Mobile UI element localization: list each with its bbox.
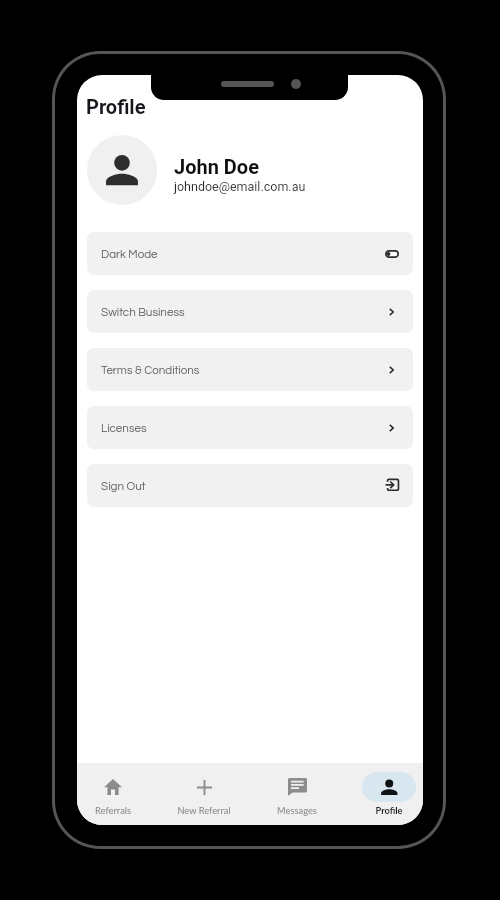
- staticText: johndoe@email.com.au: [174, 179, 306, 194]
- other: Sign out: [386, 479, 400, 493]
- staticText: John Doe: [174, 155, 259, 178]
- staticText: Referrals: [95, 805, 131, 816]
- staticText: Dark Mode: [101, 248, 158, 260]
- button[interactable]: Sign Out: [87, 464, 413, 507]
- staticText: Messages: [277, 805, 317, 816]
- staticText: Profile: [86, 95, 146, 118]
- staticText: Sign Out: [101, 480, 146, 492]
- staticText: Licenses: [101, 422, 147, 434]
- other: Dark mode toggle: [385, 250, 399, 258]
- staticText: Terms & Conditions: [101, 364, 200, 376]
- button[interactable]: Referrals: [77, 763, 157, 816]
- button[interactable]: Switch Business: [87, 290, 413, 333]
- button[interactable]: Messages: [253, 763, 341, 816]
- staticText: Switch Business: [101, 306, 185, 318]
- button[interactable]: Profile: [345, 763, 423, 816]
- button[interactable]: Licenses: [87, 406, 413, 449]
- staticText: Profile: [375, 805, 403, 816]
- staticText: New Referral: [177, 805, 231, 816]
- button[interactable]: New Referral: [160, 763, 248, 816]
- button[interactable]: Dark Mode: [87, 232, 413, 275]
- button[interactable]: Terms & Conditions: [87, 348, 413, 391]
